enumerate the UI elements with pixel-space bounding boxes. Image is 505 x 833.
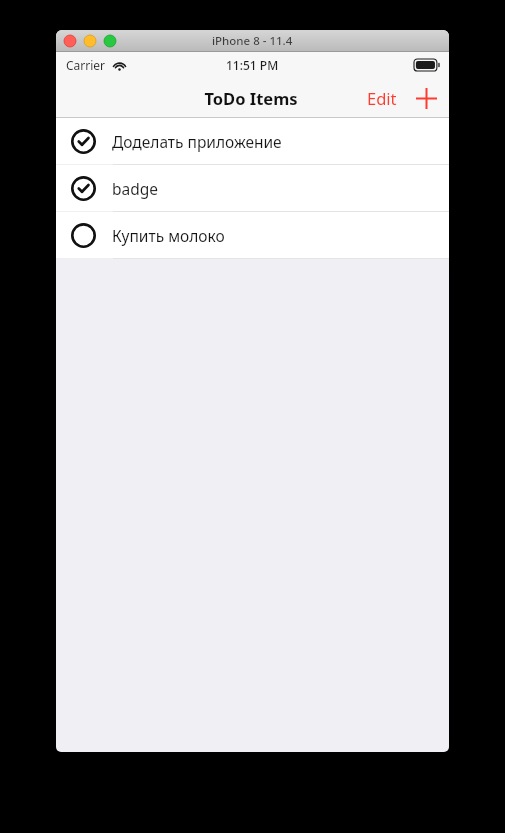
button[interactable]: Zoom — [104, 35, 116, 47]
button[interactable]: Close — [64, 35, 76, 47]
staticText: Carrier — [66, 57, 106, 73]
button[interactable]: Minimize — [84, 35, 96, 47]
staticText: 11:51 PM — [226, 57, 279, 73]
button[interactable]: badge — [56, 165, 449, 211]
staticText: iPhone 8 - 11.4 — [212, 33, 293, 49]
staticText: Купить молоко — [112, 225, 225, 246]
button[interactable]: Купить молоко — [56, 212, 449, 258]
staticText: Edit — [367, 87, 397, 109]
staticText: Доделать приложение — [112, 131, 282, 152]
button[interactable]: Add item — [411, 83, 441, 113]
staticText: badge — [112, 178, 159, 199]
staticText: ToDo Items — [204, 87, 298, 109]
button[interactable]: Доделать приложение — [56, 118, 449, 164]
button[interactable]: Edit — [361, 81, 403, 115]
